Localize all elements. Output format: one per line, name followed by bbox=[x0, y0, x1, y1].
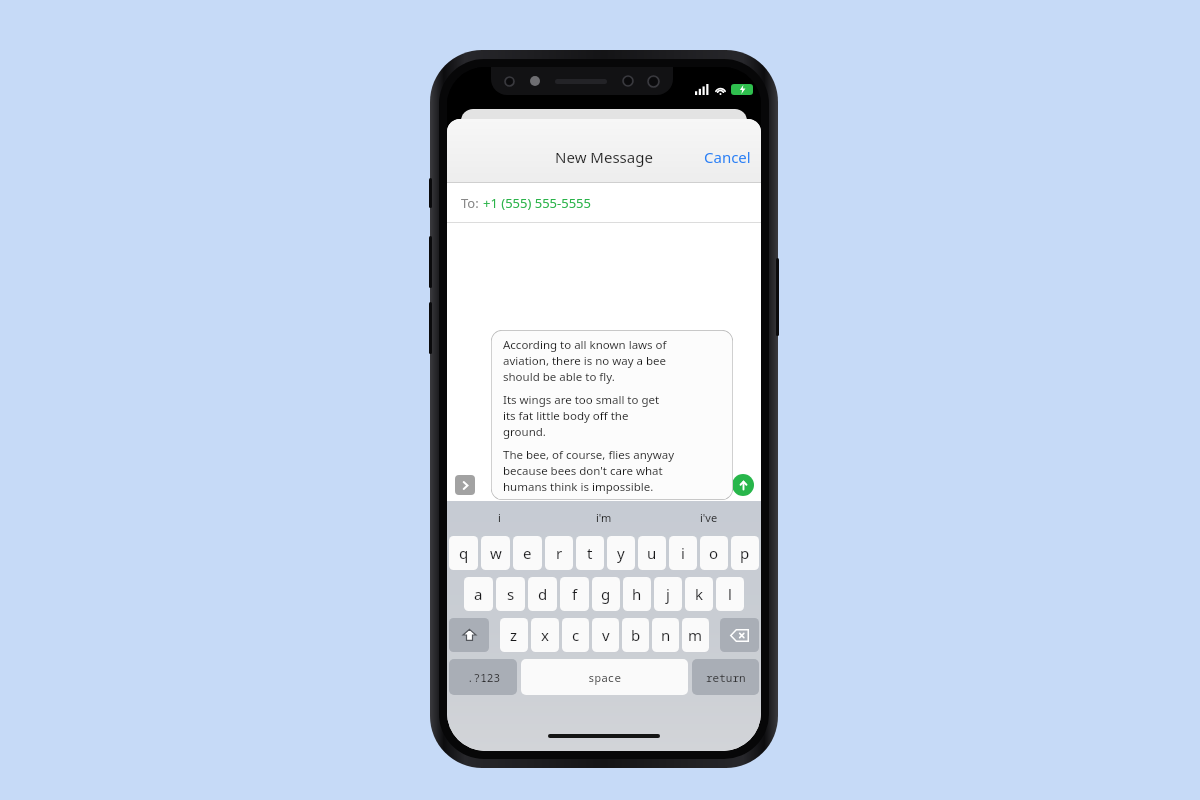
button[interactable]: return bbox=[692, 659, 759, 695]
button[interactable]: l bbox=[716, 577, 744, 611]
button[interactable]: u bbox=[638, 536, 666, 570]
button[interactable]: n bbox=[652, 618, 679, 652]
button[interactable]: f bbox=[560, 577, 589, 611]
staticText: a bbox=[474, 584, 483, 604]
button[interactable]: According to all known laws of bbox=[503, 337, 725, 495]
staticText: Its wings are too small to get bbox=[503, 392, 660, 408]
button[interactable]: .?123 bbox=[449, 659, 517, 695]
button[interactable]: v bbox=[592, 618, 619, 652]
button[interactable]: i've bbox=[656, 501, 761, 533]
button[interactable]: z bbox=[500, 618, 528, 652]
staticText: r bbox=[556, 543, 563, 563]
staticText: c bbox=[572, 625, 580, 645]
staticText: t bbox=[587, 543, 593, 563]
staticText: j bbox=[666, 584, 670, 604]
button[interactable]: Cancel bbox=[694, 141, 761, 173]
staticText: m bbox=[688, 625, 703, 645]
button[interactable]: Send bbox=[732, 474, 754, 496]
staticText: ground. bbox=[503, 424, 546, 440]
staticText: d bbox=[538, 584, 548, 604]
button[interactable]: Shift bbox=[449, 618, 489, 652]
staticText: b bbox=[631, 625, 641, 645]
button[interactable]: space bbox=[521, 659, 688, 695]
button[interactable]: To: bbox=[447, 183, 761, 223]
button[interactable]: w bbox=[481, 536, 510, 570]
button[interactable]: d bbox=[528, 577, 557, 611]
button[interactable]: g bbox=[592, 577, 620, 611]
button[interactable]: i bbox=[669, 536, 697, 570]
button[interactable]: c bbox=[562, 618, 589, 652]
staticText: u bbox=[647, 543, 657, 563]
staticText: its fat little body off the bbox=[503, 408, 629, 424]
staticText: i bbox=[681, 543, 685, 563]
staticText: Cancel bbox=[704, 147, 751, 167]
button[interactable]: i bbox=[447, 501, 551, 533]
staticText: space bbox=[588, 670, 621, 685]
staticText: New Message bbox=[555, 147, 653, 167]
staticText: g bbox=[601, 584, 611, 604]
button[interactable]: s bbox=[496, 577, 525, 611]
staticText: should be able to fly. bbox=[503, 369, 615, 385]
button[interactable]: k bbox=[685, 577, 713, 611]
staticText: humans think is impossible. bbox=[503, 479, 654, 495]
staticText: z bbox=[510, 625, 518, 645]
button[interactable]: Expand bbox=[455, 475, 475, 495]
button[interactable]: b bbox=[622, 618, 649, 652]
button[interactable]: x bbox=[531, 618, 559, 652]
staticText: x bbox=[541, 625, 549, 645]
button[interactable]: e bbox=[513, 536, 542, 570]
staticText: i bbox=[498, 510, 501, 525]
staticText: p bbox=[740, 543, 750, 563]
staticText: o bbox=[709, 543, 719, 563]
button[interactable]: j bbox=[654, 577, 682, 611]
staticText: i've bbox=[700, 510, 718, 525]
staticText: because bees don't care what bbox=[503, 463, 663, 479]
staticText: The bee, of course, flies anyway bbox=[503, 447, 675, 463]
staticText: To: bbox=[461, 194, 483, 212]
staticText: aviation, there is no way a bee bbox=[503, 353, 667, 369]
staticText: s bbox=[507, 584, 515, 604]
staticText: +1 (555) 555-5555 bbox=[483, 194, 591, 212]
staticText: w bbox=[490, 543, 502, 563]
staticText: According to all known laws of bbox=[503, 337, 667, 353]
staticText: i'm bbox=[596, 510, 612, 525]
staticText: return bbox=[706, 670, 746, 685]
button[interactable]: q bbox=[449, 536, 478, 570]
button[interactable]: y bbox=[607, 536, 635, 570]
button[interactable]: a bbox=[464, 577, 493, 611]
staticText: .?123 bbox=[467, 670, 500, 685]
staticText: n bbox=[661, 625, 671, 645]
staticText: l bbox=[728, 584, 732, 604]
button[interactable]: i'm bbox=[551, 501, 656, 533]
staticText: q bbox=[459, 543, 469, 563]
staticText: k bbox=[695, 584, 704, 604]
staticText: e bbox=[523, 543, 532, 563]
button[interactable]: Backspace bbox=[720, 618, 759, 652]
button[interactable]: p bbox=[731, 536, 759, 570]
button[interactable]: r bbox=[545, 536, 573, 570]
staticText: h bbox=[632, 584, 642, 604]
button[interactable]: t bbox=[576, 536, 604, 570]
staticText: f bbox=[572, 584, 578, 604]
staticText: v bbox=[602, 625, 610, 645]
staticText: y bbox=[617, 543, 625, 563]
button[interactable]: m bbox=[682, 618, 709, 652]
button[interactable]: h bbox=[623, 577, 651, 611]
button[interactable]: o bbox=[700, 536, 728, 570]
